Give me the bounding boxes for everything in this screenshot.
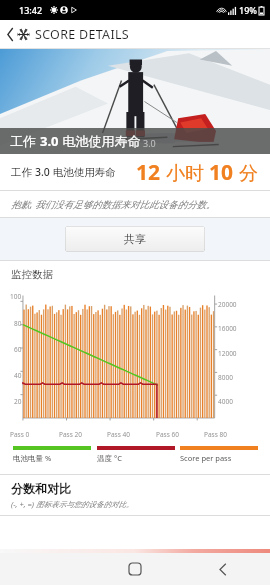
- staticText: 13:42: [19, 4, 43, 16]
- staticText: 监控数据: [11, 268, 53, 281]
- staticText: 分数和对比: [11, 481, 71, 496]
- staticText: 电池电量 %: [13, 453, 52, 463]
- staticText: 100: [10, 292, 22, 301]
- staticText: 80: [14, 319, 22, 328]
- staticText: 3.0: [40, 132, 59, 150]
- staticText: Pass 40: [107, 430, 130, 439]
- staticText: 共享: [124, 232, 146, 246]
- staticText: 工作: [10, 132, 40, 150]
- staticText: 电池使用寿命: [59, 132, 141, 150]
- button[interactable]: 工作: [0, 154, 270, 190]
- button[interactable]: Back: [3, 21, 17, 47]
- staticText: 16000: [218, 324, 237, 333]
- staticText: Pass 60: [156, 430, 179, 439]
- staticText: 20: [14, 397, 22, 406]
- button[interactable]: Home: [120, 554, 150, 584]
- staticText: 60: [14, 345, 22, 354]
- staticText: Score per pass: [180, 453, 232, 463]
- staticText: 4000: [218, 397, 233, 406]
- staticText: Pass 0: [10, 430, 30, 439]
- staticText: 10: [209, 158, 234, 187]
- staticText: 3.0: [143, 137, 156, 149]
- button[interactable]: 共享: [65, 226, 205, 252]
- staticText: 12000: [218, 349, 237, 358]
- staticText: 40: [14, 371, 22, 380]
- staticText: 工作: [11, 165, 35, 179]
- staticText: 分: [234, 160, 258, 186]
- staticText: 温度 °C: [97, 453, 122, 463]
- button[interactable]: Back: [208, 554, 238, 584]
- staticText: 小时: [161, 160, 209, 186]
- staticText: (-, +, =) 图标表示与您的设备的对比。: [11, 499, 134, 509]
- staticText: 3.0: [35, 165, 50, 179]
- staticText: 电池使用寿命: [50, 165, 116, 179]
- staticText: 20000: [218, 300, 237, 309]
- staticText: SCORE DETAILS: [35, 26, 129, 43]
- staticText: Pass 20: [59, 430, 82, 439]
- staticText: 12: [136, 158, 161, 187]
- staticText: 抱歉, 我们没有足够的数据来对比此设备的分数。: [11, 198, 216, 211]
- staticText: Pass 80: [204, 430, 227, 439]
- staticText: 8000: [218, 373, 233, 382]
- staticText: 19%: [239, 4, 257, 16]
